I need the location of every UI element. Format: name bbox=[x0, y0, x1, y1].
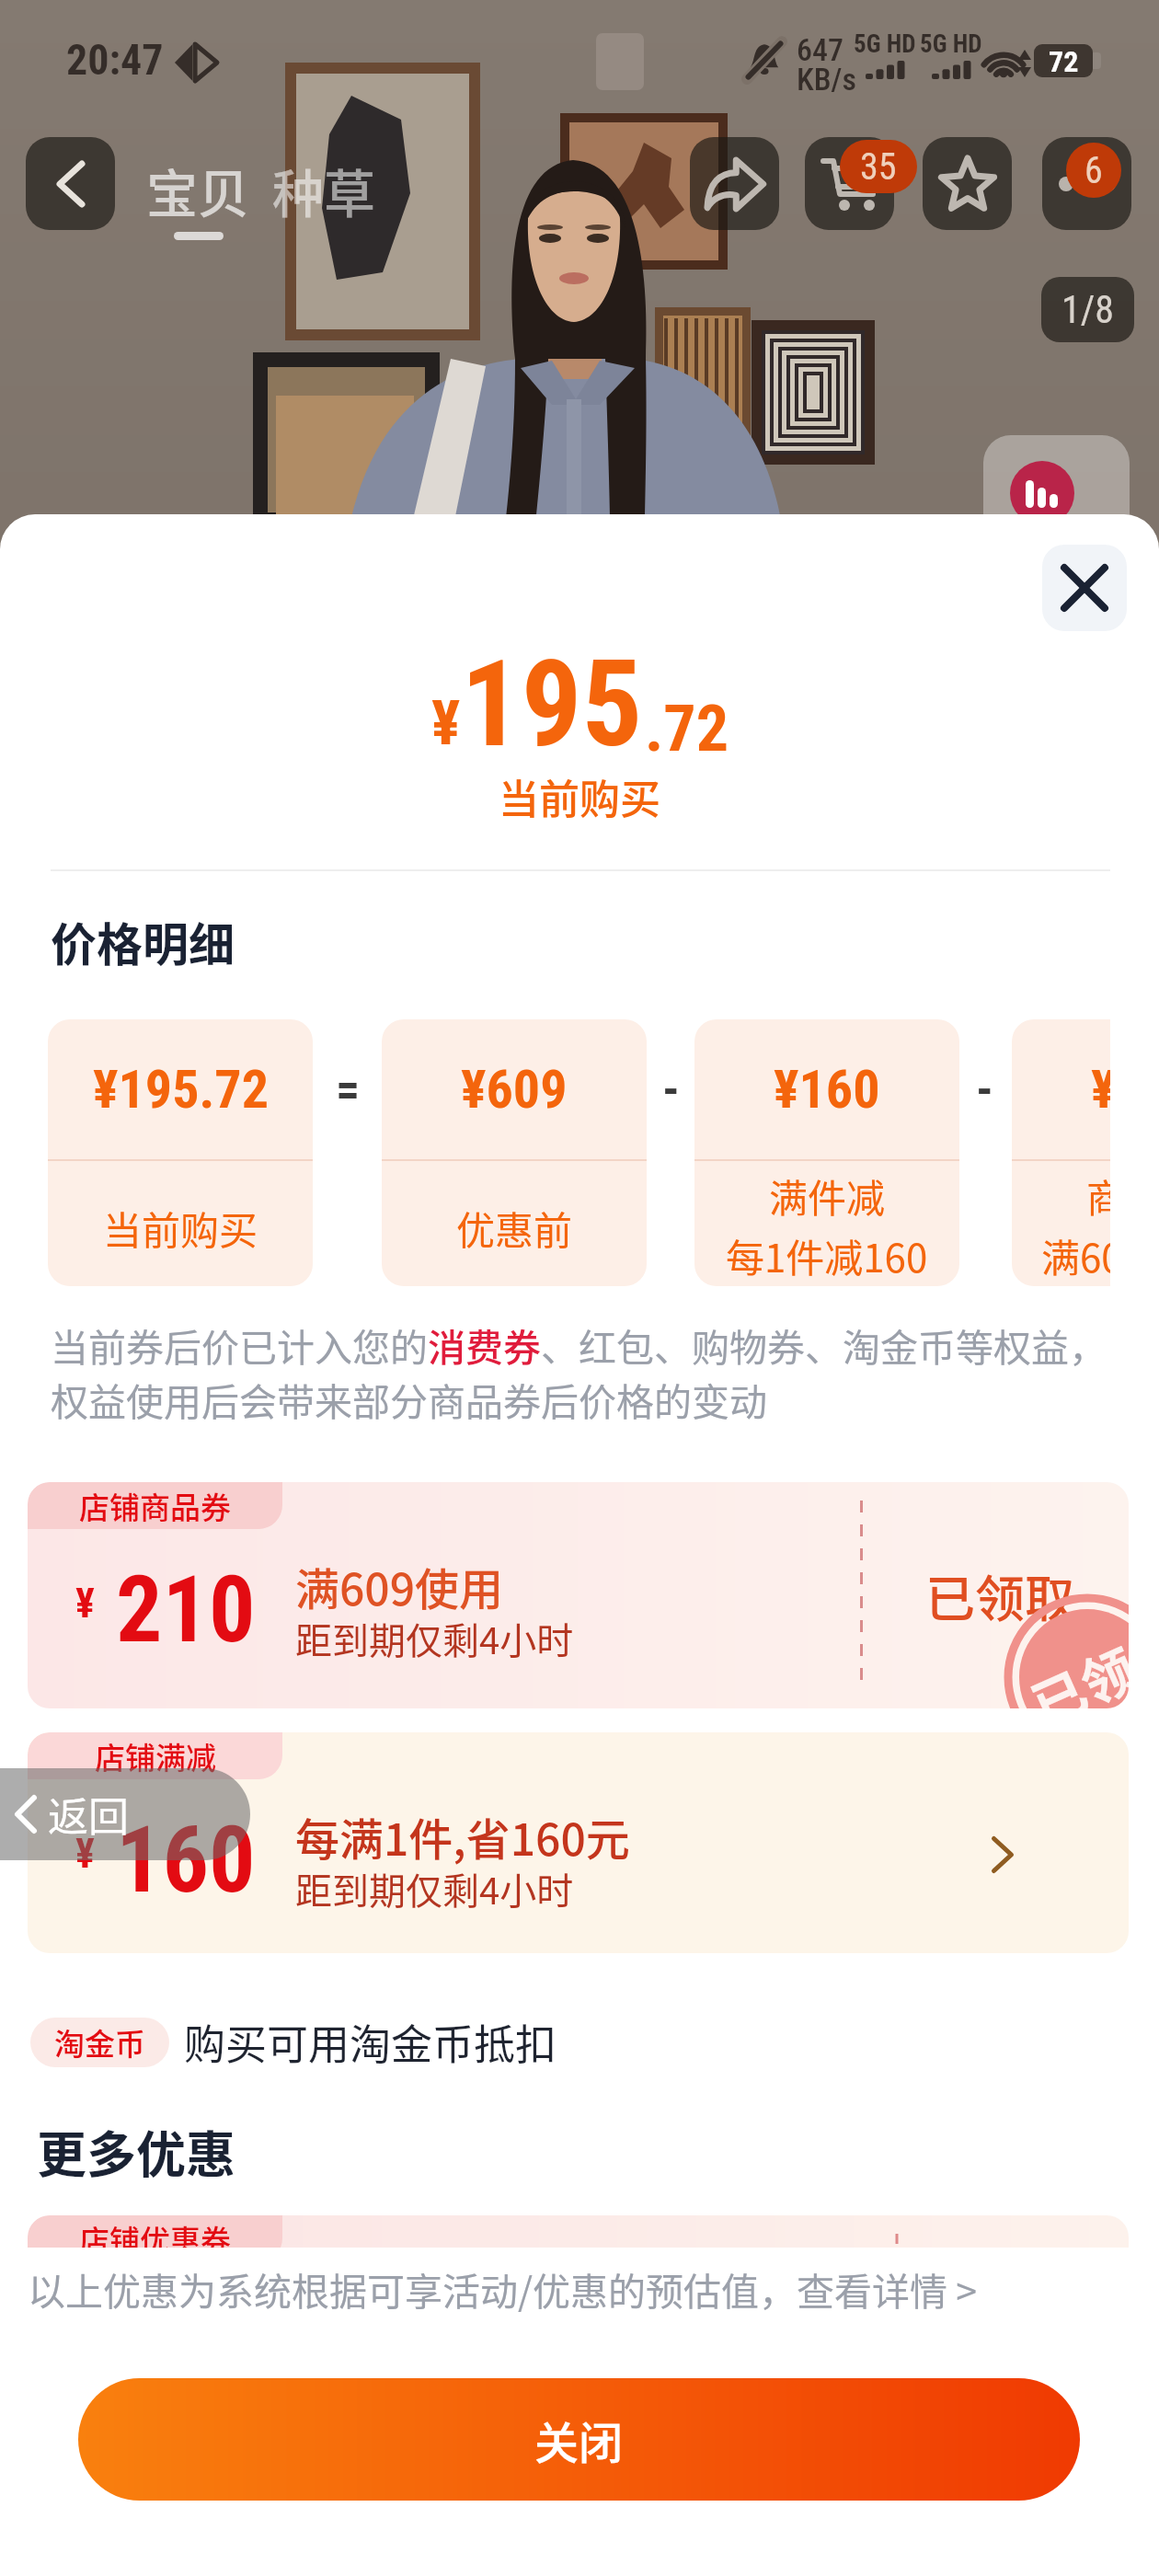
staticText: ¥210 bbox=[1091, 1058, 1110, 1121]
staticText: 210 bbox=[116, 1556, 256, 1663]
button[interactable]: More bbox=[1042, 137, 1131, 230]
button[interactable]: Cart bbox=[805, 137, 894, 230]
staticText: 每1件减160 bbox=[726, 1227, 928, 1283]
staticText: 商品券 bbox=[1086, 1167, 1110, 1224]
staticText: 160 bbox=[116, 1806, 256, 1914]
staticText: 满609减210 bbox=[1041, 1227, 1110, 1283]
staticText: 价格明细 bbox=[51, 908, 235, 974]
staticText: 20:47 bbox=[66, 35, 164, 85]
button[interactable]: Share bbox=[690, 137, 779, 230]
staticText: 35 bbox=[860, 145, 897, 189]
staticText: ¥195.72 bbox=[93, 1058, 269, 1121]
staticText: 6 bbox=[1084, 149, 1103, 192]
staticText: 淘金币 bbox=[54, 2020, 145, 2064]
staticText: 距到期仅剩4小时 bbox=[295, 1612, 574, 1665]
staticText: 权益使用后会带来部分商品券后价格的变动 bbox=[51, 1372, 767, 1426]
staticText: 72 bbox=[1049, 44, 1079, 77]
button[interactable]: Favorite bbox=[923, 137, 1012, 230]
staticText: 195 bbox=[461, 634, 643, 774]
staticText: 已领 bbox=[1018, 1627, 1129, 1708]
staticText: 关闭 bbox=[534, 2408, 624, 2472]
staticText: - bbox=[976, 1062, 993, 1118]
button[interactable]: Back bbox=[26, 137, 115, 230]
staticText: 更多优惠 bbox=[37, 2115, 235, 2187]
button[interactable]: 店铺满减 bbox=[28, 1732, 1129, 1953]
button[interactable]: Back bbox=[0, 1768, 250, 1860]
staticText: 返回 bbox=[48, 1785, 129, 1844]
staticText: 优惠前 bbox=[456, 1200, 573, 1256]
staticText: 已领取 bbox=[925, 1559, 1074, 1631]
staticText: ¥ bbox=[75, 1830, 95, 1878]
staticText: 店铺满减 bbox=[95, 1734, 216, 1778]
staticText: 当前购买 bbox=[499, 767, 660, 826]
staticText: = bbox=[336, 1062, 361, 1118]
staticText: - bbox=[662, 1062, 680, 1118]
staticText: 满件减 bbox=[769, 1167, 886, 1224]
staticText: 1/8 bbox=[1061, 287, 1115, 332]
staticText: ¥609 bbox=[461, 1058, 568, 1121]
button[interactable]: 关闭 bbox=[78, 2378, 1080, 2501]
staticText: ¥ bbox=[75, 1580, 95, 1627]
staticText: ¥ bbox=[431, 688, 461, 759]
staticText: 5G HD bbox=[920, 29, 982, 59]
staticText: 满609使用 bbox=[295, 1554, 504, 1618]
staticText: 当前购买 bbox=[103, 1200, 258, 1256]
staticText: 当前券后价已计入您的消费券、红包、购物券、淘金币等权益， bbox=[51, 1317, 1107, 1372]
staticText: 5G HD bbox=[854, 29, 916, 59]
staticText: 以上优惠为系统根据可享活动/优惠的预估值，查看详情 > bbox=[28, 2261, 978, 2316]
button[interactable]: Close bbox=[1042, 545, 1127, 631]
staticText: KB/s bbox=[797, 61, 856, 98]
staticText: 距到期仅剩4小时 bbox=[295, 1862, 574, 1915]
staticText: 店铺优惠券 bbox=[79, 2217, 231, 2261]
staticText: 宝贝 bbox=[146, 153, 249, 227]
staticText: 每满1件,省160元 bbox=[295, 1804, 630, 1869]
button[interactable]: 店铺商品券 bbox=[28, 1482, 1129, 1708]
staticText: 647 bbox=[797, 31, 843, 68]
staticText: 购买可用淘金币抵扣 bbox=[184, 2012, 557, 2072]
staticText: 店铺商品券 bbox=[79, 1484, 231, 1528]
button[interactable]: Live bbox=[983, 435, 1130, 546]
staticText: .72 bbox=[645, 691, 729, 766]
staticText: 种草 bbox=[272, 153, 375, 227]
staticText: ¥160 bbox=[774, 1058, 880, 1121]
